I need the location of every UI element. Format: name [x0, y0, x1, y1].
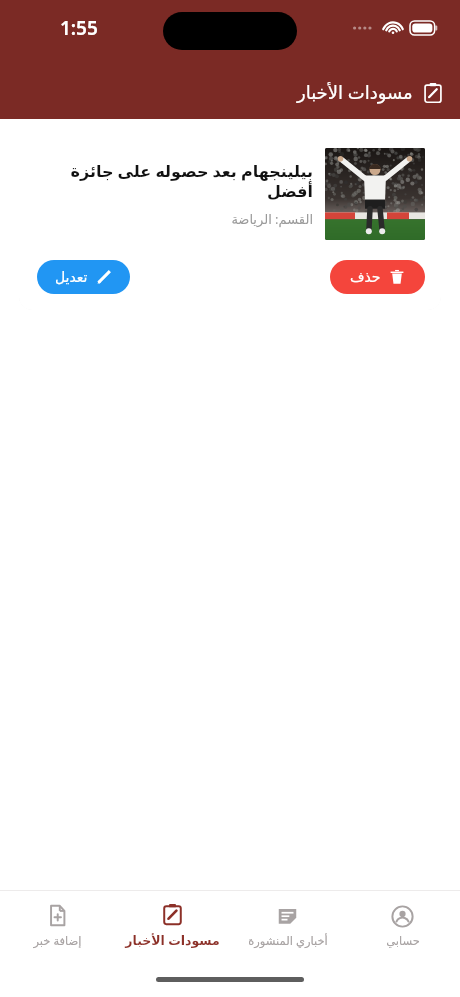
button[interactable]: تعديل: [37, 260, 130, 294]
staticText: بيلينجهام بعد حصوله على جائزة أفضل: [37, 160, 313, 201]
button[interactable]: أخباري المنشورة: [230, 891, 345, 961]
staticText: القسم: الرياضة: [231, 210, 313, 228]
button[interactable]: بيلينجهام بعد حصوله على جائزة أفضل: [19, 133, 441, 310]
staticText: تعديل: [55, 269, 88, 285]
staticText: مسودات الأخبار: [125, 932, 220, 949]
staticText: أخباري المنشورة: [248, 933, 328, 949]
staticText: حذف: [350, 269, 381, 285]
button[interactable]: حذف: [330, 260, 425, 294]
button[interactable]: مسودات الأخبار: [115, 891, 230, 961]
button[interactable]: حسابي: [345, 891, 460, 961]
button[interactable]: إضافة خبر: [0, 891, 115, 961]
staticText: 1:55: [60, 15, 98, 41]
staticText: إضافة خبر: [33, 933, 82, 949]
staticText: مسودات الأخبار: [297, 80, 413, 105]
staticText: حسابي: [386, 934, 420, 947]
